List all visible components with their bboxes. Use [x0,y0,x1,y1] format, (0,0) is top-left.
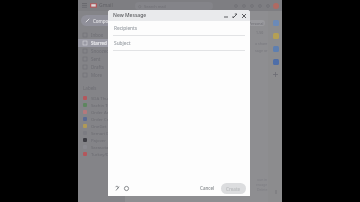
button[interactable]: Main menu [81,2,88,9]
button[interactable]: Recipients [108,21,250,35]
staticText: More [91,72,103,78]
button[interactable]: Turkey/Dec [78,150,125,157]
staticText: Create [226,186,241,192]
button[interactable]: Personal [248,20,265,26]
button[interactable]: Sachin Tutorial [78,101,125,108]
button[interactable]: Contacts [269,55,282,68]
button[interactable]: More [78,71,121,79]
button[interactable]: Sent [78,55,121,63]
staticText: Compose [93,18,113,24]
button[interactable]: Compose [81,15,119,26]
button[interactable]: Settings [256,2,264,10]
button[interactable]: Inbox [78,31,121,39]
button[interactable]: Insert emoji [122,184,131,193]
button[interactable]: Subject [108,36,250,50]
staticText: Gmail [99,2,113,9]
button[interactable]: Clear [232,2,240,10]
button[interactable]: Order Am [78,108,125,115]
staticText: a share [255,41,268,46]
staticText: Delete [257,187,268,192]
staticText: oun in [257,177,268,182]
button[interactable]: OneGet Dr [78,122,125,129]
button[interactable]: Drafts [78,63,121,71]
staticText: Search mail [144,4,166,9]
staticText: Personal [249,21,264,26]
staticText: essage [256,182,268,187]
button[interactable]: Sarasota C [78,143,125,150]
staticText: Snoozed [91,48,110,54]
staticText: Turkey/Dec [91,151,114,157]
staticText: Cancel [200,185,215,191]
staticText: Drafts [91,64,104,70]
staticText: Sachin Tutorial [91,102,121,108]
button[interactable]: Cancel [196,183,219,193]
staticText: OneGet Dr [91,123,113,129]
button[interactable]: Starred [78,39,121,47]
staticText: 1-50 [256,30,264,35]
staticText: Pajover [91,137,107,143]
button[interactable]: Calendar [269,16,282,29]
staticText: sage or [255,48,268,53]
staticText: Sarasota C [91,144,113,150]
button[interactable]: Help [248,2,256,10]
button[interactable]: Semari Da [78,129,125,136]
button[interactable]: Filter [240,2,248,10]
button[interactable]: Tasks [269,42,282,55]
staticText: SDA Thursd [91,95,115,101]
button[interactable]: Full screen [230,11,239,20]
staticText: Order Am [91,109,111,115]
staticText: Semari Da [91,130,112,136]
button[interactable]: Snoozed [78,47,121,55]
staticText: Order Cro [91,116,112,122]
button[interactable]: SDA Thursd [78,94,125,101]
staticText: Sent [91,56,101,62]
button[interactable]: Minimize [221,11,230,20]
button[interactable]: Apps [264,2,272,10]
button[interactable]: Account [272,2,280,10]
button[interactable]: Get add-ons [269,68,282,81]
staticText: New Message [113,12,147,19]
button[interactable]: Pajover [78,136,125,143]
button[interactable]: Order Cro [78,115,125,122]
button[interactable]: Attach file [113,184,122,193]
staticText: Subject [114,40,131,47]
staticText: Labels [83,85,97,91]
button[interactable]: Keep [269,29,282,42]
button[interactable]: Create [221,183,246,194]
staticText: Recipients [114,25,138,32]
button[interactable]: New Message [108,10,250,21]
button[interactable]: Save & close [239,11,248,20]
staticText: Starred [91,40,107,46]
staticText: Inbox [91,32,104,38]
